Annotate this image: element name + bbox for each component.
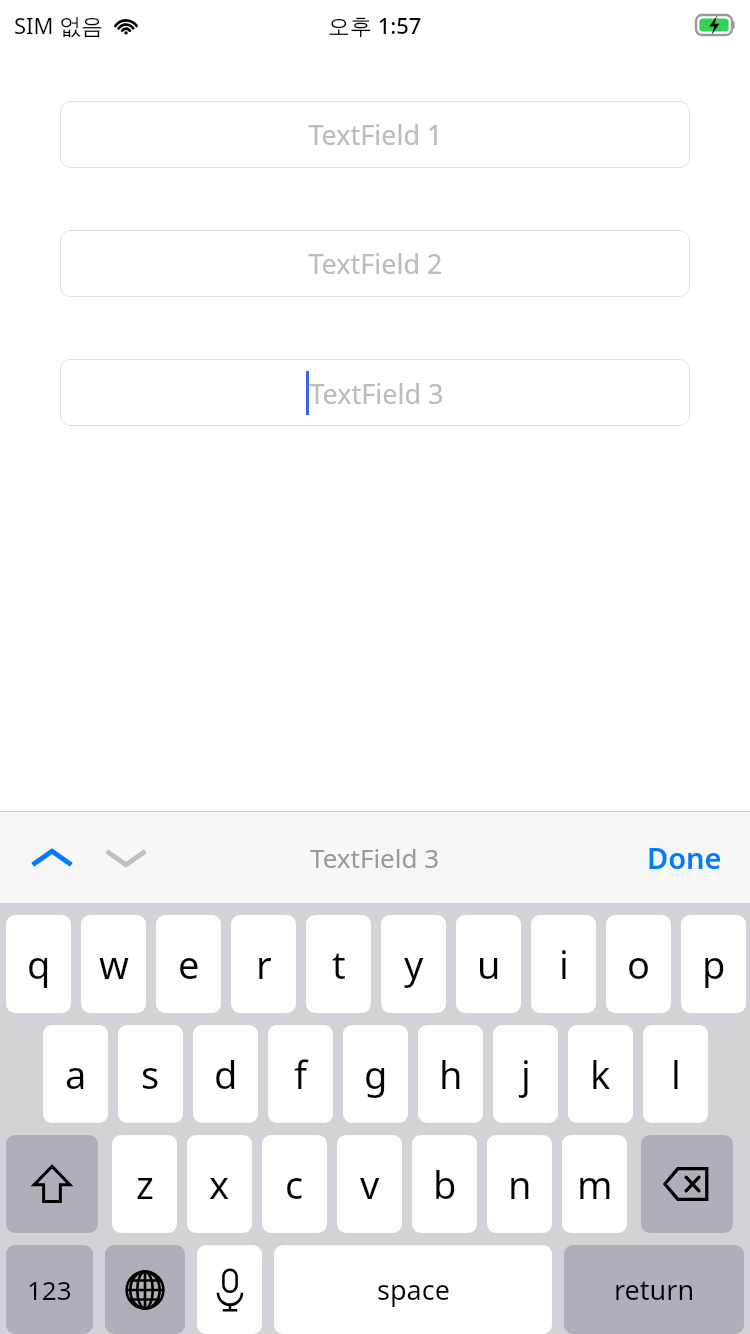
button[interactable]: s: [118, 1025, 183, 1123]
staticText: i: [559, 938, 569, 990]
button[interactable]: v: [337, 1135, 402, 1233]
button[interactable]: u: [456, 915, 521, 1013]
button[interactable]: h: [418, 1025, 483, 1123]
button[interactable]: r: [231, 915, 296, 1013]
button[interactable]: o: [606, 915, 671, 1013]
button[interactable]: a: [43, 1025, 108, 1123]
button[interactable]: Next field: [96, 828, 156, 888]
staticText: z: [136, 1158, 154, 1210]
staticText: l: [671, 1048, 681, 1100]
button[interactable]: Backspace: [641, 1135, 733, 1233]
staticText: Done: [647, 838, 722, 877]
button[interactable]: TextField 3: [60, 359, 690, 426]
staticText: a: [65, 1048, 87, 1100]
button[interactable]: Done: [639, 828, 730, 887]
staticText: k: [590, 1048, 611, 1100]
button[interactable]: return: [564, 1245, 744, 1334]
staticText: TextField 3: [310, 840, 440, 875]
staticText: p: [702, 938, 726, 990]
button[interactable]: y: [381, 915, 446, 1013]
button[interactable]: c: [262, 1135, 327, 1233]
button[interactable]: space: [274, 1245, 552, 1334]
button[interactable]: n: [487, 1135, 552, 1233]
staticText: TextField 1: [308, 116, 443, 153]
button[interactable]: z: [112, 1135, 177, 1233]
staticText: v: [360, 1158, 380, 1210]
button[interactable]: Dictation: [197, 1245, 262, 1334]
staticText: g: [364, 1048, 388, 1100]
staticText: 123: [27, 1272, 72, 1307]
button[interactable]: q: [6, 915, 71, 1013]
staticText: q: [27, 938, 51, 990]
button[interactable]: t: [306, 915, 371, 1013]
button[interactable]: 123: [6, 1245, 93, 1334]
staticText: space: [377, 1271, 450, 1308]
button[interactable]: d: [193, 1025, 258, 1123]
staticText: m: [577, 1158, 613, 1210]
staticText: e: [178, 938, 200, 990]
button[interactable]: Shift: [6, 1135, 98, 1233]
staticText: TextField 3: [309, 375, 444, 412]
button[interactable]: w: [81, 915, 146, 1013]
staticText: 오후 1:57: [328, 10, 422, 40]
staticText: SIM 없음: [14, 10, 104, 40]
staticText: TextField 2: [308, 245, 443, 282]
staticText: h: [439, 1048, 463, 1100]
staticText: j: [521, 1048, 531, 1100]
staticText: y: [404, 938, 424, 990]
staticText: c: [285, 1158, 304, 1210]
staticText: return: [614, 1271, 695, 1308]
button[interactable]: f: [268, 1025, 333, 1123]
staticText: r: [256, 938, 272, 990]
button[interactable]: m: [562, 1135, 627, 1233]
staticText: f: [294, 1048, 308, 1100]
button[interactable]: e: [156, 915, 221, 1013]
button[interactable]: x: [187, 1135, 252, 1233]
button[interactable]: i: [531, 915, 596, 1013]
staticText: d: [214, 1048, 238, 1100]
staticText: b: [433, 1158, 457, 1210]
button[interactable]: TextField 2: [60, 230, 690, 297]
button[interactable]: g: [343, 1025, 408, 1123]
staticText: s: [141, 1048, 160, 1100]
button[interactable]: b: [412, 1135, 477, 1233]
staticText: o: [627, 938, 650, 990]
button[interactable]: k: [568, 1025, 633, 1123]
button[interactable]: p: [681, 915, 746, 1013]
staticText: u: [477, 938, 501, 990]
button[interactable]: j: [493, 1025, 558, 1123]
staticText: t: [332, 938, 346, 990]
button[interactable]: Change keyboard: [105, 1245, 185, 1334]
button[interactable]: TextField 1: [60, 101, 690, 168]
button[interactable]: Previous field: [22, 828, 82, 888]
staticText: w: [99, 938, 129, 990]
staticText: x: [209, 1158, 230, 1210]
button[interactable]: l: [643, 1025, 708, 1123]
staticText: n: [508, 1158, 532, 1210]
